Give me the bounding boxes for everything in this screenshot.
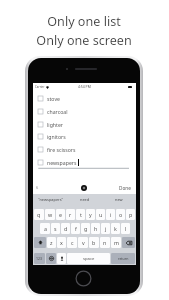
button[interactable]: "newspapers"	[33, 194, 68, 204]
button[interactable]: f	[71, 223, 80, 234]
staticText: g	[84, 225, 88, 232]
staticText: 123	[36, 256, 43, 261]
button[interactable]: n	[100, 237, 110, 248]
staticText: p	[129, 211, 133, 218]
button[interactable]: q	[34, 209, 44, 220]
staticText: z	[50, 239, 53, 246]
staticText: return	[118, 256, 129, 261]
button[interactable]: 123	[34, 253, 45, 264]
staticText: y	[89, 211, 92, 218]
staticText: h	[94, 225, 98, 232]
staticText: o	[119, 211, 123, 218]
staticText: b	[92, 239, 96, 246]
staticText: 4:54 PM	[78, 84, 91, 89]
staticText: Carrier	[35, 85, 45, 89]
staticText: "newspapers"	[38, 197, 64, 202]
staticText: Only one list	[47, 13, 121, 30]
button[interactable]: g	[81, 223, 90, 234]
staticText: q	[37, 211, 41, 218]
button[interactable]: o	[116, 209, 125, 220]
button[interactable]: w	[45, 209, 55, 220]
button[interactable]: stove	[33, 92, 136, 105]
button[interactable]: Dictation	[57, 253, 66, 264]
button[interactable]: l	[121, 223, 130, 234]
button[interactable]: t	[76, 209, 85, 220]
button[interactable]: Add item	[81, 185, 87, 191]
button[interactable]: need	[68, 194, 102, 204]
button[interactable]: charcoal	[33, 105, 136, 118]
staticText: a	[44, 225, 47, 232]
button[interactable]: z	[47, 237, 56, 248]
button[interactable]: return	[111, 253, 135, 264]
button[interactable]: b	[89, 237, 99, 248]
button[interactable]: r	[66, 209, 75, 220]
button[interactable]: d	[61, 223, 70, 234]
staticText: x	[60, 239, 63, 246]
staticText: f	[75, 225, 77, 232]
button[interactable]: new	[102, 194, 136, 204]
button[interactable]: newspapers	[33, 156, 136, 169]
button[interactable]: i	[106, 209, 115, 220]
staticText: u	[99, 211, 103, 218]
button[interactable]: fire scissors	[33, 143, 136, 156]
staticText: Only one screen	[36, 32, 132, 49]
button[interactable]: c	[67, 237, 77, 248]
button[interactable]: Shift	[34, 237, 46, 248]
staticText: lighter	[47, 121, 64, 128]
staticText: need	[80, 197, 90, 202]
button[interactable]: m	[111, 237, 121, 248]
staticText: ignitors	[47, 133, 66, 140]
staticText: fire scissors	[47, 146, 76, 153]
staticText: newspapers	[47, 159, 77, 166]
button[interactable]: x	[57, 237, 66, 248]
staticText: charcoal	[47, 108, 68, 115]
staticText: i	[110, 211, 112, 218]
button[interactable]: Next keyboard	[46, 253, 56, 264]
button[interactable]: s	[51, 223, 60, 234]
button[interactable]: h	[91, 223, 100, 234]
staticText: j	[105, 225, 107, 232]
staticText: n	[103, 239, 107, 246]
button[interactable]: Done	[119, 185, 136, 191]
button[interactable]: Backspace	[122, 237, 135, 248]
staticText: s	[54, 225, 57, 232]
staticText: c	[71, 239, 74, 246]
button[interactable]: v	[78, 237, 88, 248]
button[interactable]: y	[86, 209, 95, 220]
button[interactable]: e	[56, 209, 65, 220]
staticText: r	[69, 211, 72, 218]
staticText: stove	[47, 95, 60, 102]
button[interactable]: ignitors	[33, 130, 136, 143]
button[interactable]: u	[96, 209, 105, 220]
button[interactable]: lighter	[33, 118, 136, 131]
staticText: w	[48, 211, 53, 218]
button[interactable]: space	[67, 253, 110, 264]
staticText: k	[114, 225, 117, 232]
staticText: l	[125, 225, 127, 232]
staticText: m	[114, 239, 119, 246]
staticText: e	[59, 211, 62, 218]
button[interactable]: k	[111, 223, 120, 234]
staticText: t	[80, 211, 82, 218]
staticText: new	[115, 197, 123, 202]
staticText: d	[64, 225, 68, 232]
button[interactable]: j	[101, 223, 110, 234]
staticText: 6	[36, 185, 39, 190]
staticText: v	[82, 239, 85, 246]
staticText: space	[83, 256, 95, 262]
button[interactable]: p	[126, 209, 135, 220]
button[interactable]: a	[40, 223, 50, 234]
